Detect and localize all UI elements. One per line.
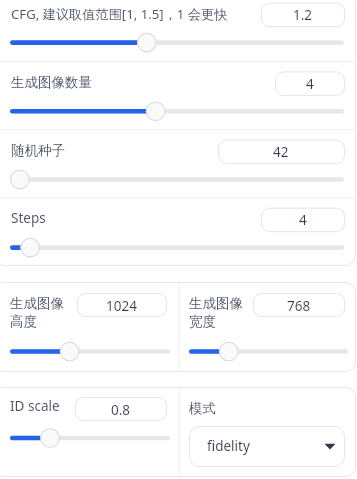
staticText: 42 (273, 143, 289, 161)
button[interactable]: Seed value (218, 140, 344, 163)
staticText: 生成图像 (10, 295, 64, 312)
button[interactable]: ID scale slider (10, 428, 170, 448)
staticText: fidelity (207, 437, 250, 455)
staticText: 1024 (106, 297, 137, 315)
staticText: 1.2 (293, 6, 313, 24)
button[interactable]: Image height value (77, 294, 166, 317)
staticText: Steps (11, 209, 46, 227)
button[interactable]: Mode dropdown, fidelity (189, 426, 345, 466)
button[interactable]: Image width value (253, 294, 344, 317)
staticText: 4 (299, 211, 307, 229)
staticText: 模式 (189, 400, 216, 417)
staticText: 生成图像 (189, 295, 243, 312)
button[interactable]: Image count slider (10, 101, 344, 121)
button[interactable]: Image count value (275, 72, 344, 95)
staticText: 4 (306, 75, 314, 93)
staticText: ID scale (10, 397, 60, 415)
button[interactable]: ID scale value (75, 398, 166, 421)
staticText: 0.8 (111, 401, 131, 419)
button[interactable]: Steps value (261, 208, 344, 231)
staticText: 生成图像数量 (11, 74, 92, 91)
staticText: 768 (287, 297, 311, 315)
staticText: CFG, 建议取值范围[1, 1.5]，1 会更快 (11, 5, 228, 23)
button[interactable]: Seed slider (10, 170, 344, 190)
staticText: 随机种子 (11, 142, 65, 159)
staticText: 高度 (10, 313, 37, 330)
button[interactable]: Image height slider (10, 342, 170, 362)
staticText: 宽度 (189, 313, 216, 330)
button[interactable]: CFG slider (10, 33, 344, 53)
button[interactable]: Steps slider (10, 238, 344, 258)
button[interactable]: CFG value (261, 3, 344, 26)
button[interactable]: Image width slider (189, 342, 348, 362)
